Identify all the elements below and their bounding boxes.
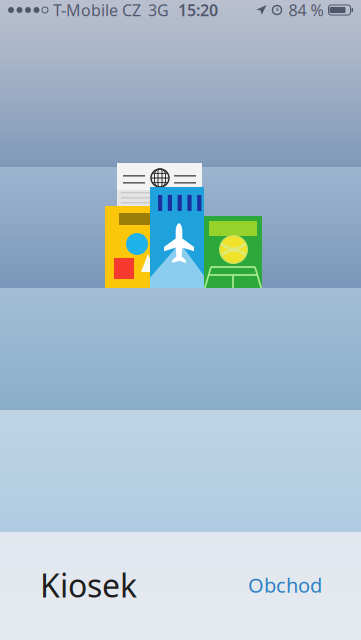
button[interactable]: Obchod (242, 563, 328, 607)
staticText: 84 % (288, 0, 323, 21)
staticText: T-Mobile CZ (53, 0, 141, 21)
staticText: 15:20 (178, 0, 218, 21)
staticText: 3G (148, 0, 169, 21)
staticText: Obchod (248, 572, 322, 598)
staticText: Kiosek (40, 564, 137, 606)
